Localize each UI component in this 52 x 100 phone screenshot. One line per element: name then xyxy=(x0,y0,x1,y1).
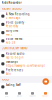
button[interactable]: Library xyxy=(13,89,26,100)
staticText: Voice memo xyxy=(6,37,23,41)
staticText: CONTROL MY MIND xyxy=(2,46,28,50)
button[interactable]: Voice quality xyxy=(0,20,52,28)
staticText: RECENT AUDIO xyxy=(2,7,22,10)
staticText: TOOLS xyxy=(2,78,9,81)
staticText: Record xyxy=(42,95,48,97)
button[interactable]: Transcript xyxy=(0,60,52,68)
staticText: Scaling Staff xyxy=(6,83,21,87)
button[interactable]: New recording xyxy=(42,78,49,85)
button[interactable]: Record xyxy=(39,89,52,100)
button[interactable]: Record audio xyxy=(0,51,52,60)
staticText: Home xyxy=(4,95,8,97)
staticText: Edit xyxy=(6,72,11,76)
staticText: Yesterday xyxy=(6,24,18,28)
staticText: Story time xyxy=(6,29,19,32)
button[interactable]: Home xyxy=(0,89,13,100)
staticText: Preferences xyxy=(6,68,23,72)
staticText: Transcript xyxy=(6,60,18,64)
staticText: Mar 2 xyxy=(6,33,13,36)
button[interactable]: Voice memo xyxy=(0,37,52,45)
staticText: Search xyxy=(29,95,35,97)
staticText: https://example.com/transcript xyxy=(6,64,45,67)
staticText: A New Recording xyxy=(6,12,30,16)
button[interactable]: Search xyxy=(26,89,39,100)
staticText: Tap to begin xyxy=(6,56,24,59)
button[interactable]: Scaling Staff xyxy=(0,83,52,91)
staticText: Library xyxy=(16,95,22,97)
staticText: Record audio xyxy=(6,52,25,55)
staticText: Voice quality xyxy=(6,21,24,24)
button[interactable]: Preferences xyxy=(0,68,52,76)
staticText: Kids Recorder xyxy=(2,1,22,4)
button[interactable]: A New Recording xyxy=(0,12,52,20)
button[interactable]: Story time xyxy=(0,28,52,37)
staticText: Feb 28 xyxy=(6,41,16,44)
staticText: 2 mins ago xyxy=(6,16,21,20)
